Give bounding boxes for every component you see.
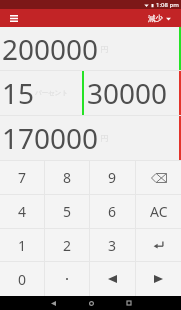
button[interactable]: Move right [136,262,181,296]
staticText: 2 [63,236,72,255]
button[interactable]: Recent apps [122,296,136,310]
button[interactable]: Home [84,296,98,310]
staticText: 9 [108,168,117,187]
staticText: 3 [108,236,117,255]
button[interactable]: Back [46,296,60,310]
button[interactable]: 2 [45,229,89,261]
staticText: 円 [100,44,108,54]
button[interactable]: 3 [90,229,135,261]
staticText: 1:08 pm [156,1,179,9]
staticText: 0 [18,270,27,289]
button[interactable]: 0 [0,262,44,296]
button[interactable]: Move left [90,262,135,296]
staticText: 7 [18,168,27,187]
staticText: 1 [18,236,27,255]
button[interactable]: 7 [0,161,44,194]
staticText: AC [150,202,168,221]
button[interactable]: 4 [0,195,44,228]
button[interactable]: 9 [90,161,135,194]
button[interactable]: Enter [136,229,181,261]
staticText: 15 [2,74,35,112]
button[interactable] [45,262,89,296]
staticText: 200000 [2,30,99,68]
staticText: 減少 [148,14,163,23]
staticText: パーセント [35,89,69,97]
staticText: 30000 [87,74,168,112]
staticText: 8 [63,168,72,187]
staticText: 5 [63,202,72,221]
staticText: 6 [108,202,117,221]
button[interactable]: Menu [6,10,22,26]
button[interactable]: AC [136,195,181,228]
staticText: 円 [100,133,108,143]
button[interactable]: Backspace [136,161,181,194]
button[interactable]: 6 [90,195,135,228]
button[interactable]: 8 [45,161,89,194]
staticText: 170000 [2,119,99,157]
button[interactable]: 1 [0,229,44,261]
button[interactable]: 5 [45,195,89,228]
button[interactable]: 減少 [148,14,171,23]
staticText: 4 [18,202,27,221]
